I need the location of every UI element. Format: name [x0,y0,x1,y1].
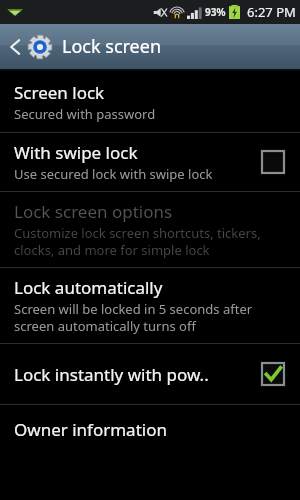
staticText: With swipe lock [14,141,138,164]
staticText: Screen lock [14,81,105,104]
staticText: Lock screen [62,34,162,59]
staticText: Owner information [14,418,167,441]
button[interactable]: Screen lock [0,71,300,132]
staticText: Lock instantly with pow.. [14,363,209,386]
button[interactable]: Navigate up [0,24,62,69]
button[interactable]: Owner information [0,405,300,454]
staticText: 6:27 PM [247,3,296,21]
staticText: Use secured lock with swipe lock [14,165,213,183]
button[interactable]: Checked [256,357,290,391]
staticText: Lock screen options [14,200,173,223]
button[interactable]: Unchecked [256,145,290,179]
staticText: Secured with password [14,105,156,123]
button[interactable]: Lock screen options [0,192,300,267]
button[interactable]: Lock automatically [0,268,300,343]
staticText: Customize lock screen shortcuts, tickers… [14,224,290,259]
staticText: 93% [205,5,226,19]
staticText: Screen will be locked in 5 seconds after… [14,300,290,335]
button[interactable]: With swipe lock [0,133,300,191]
button[interactable]: Lock instantly with pow.. [0,344,300,404]
staticText: Lock automatically [14,276,163,299]
